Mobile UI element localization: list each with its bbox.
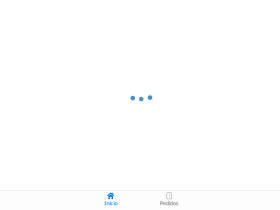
button[interactable]: Pedidos: [142, 193, 196, 210]
button[interactable]: Inicio: [84, 193, 138, 210]
staticText: Inicio: [104, 200, 117, 207]
staticText: Pedidos: [160, 200, 179, 207]
